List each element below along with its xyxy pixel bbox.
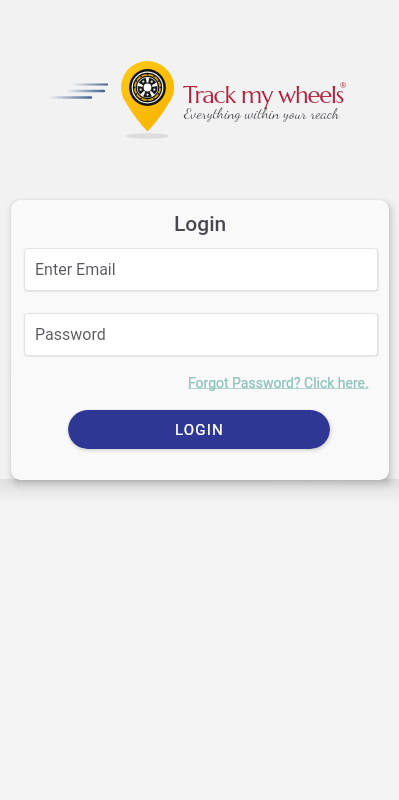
staticText: Everything within your reach: [184, 104, 340, 122]
staticText: Track my wheels: [183, 80, 344, 110]
staticText: Login: [174, 212, 227, 237]
button[interactable]: Enter Email: [24, 248, 378, 291]
staticText: ®: [340, 81, 347, 90]
button[interactable]: Password: [24, 313, 378, 356]
staticText: LOGIN: [175, 421, 224, 439]
staticText: Enter Email: [35, 260, 116, 279]
staticText: Password: [35, 325, 106, 344]
button[interactable]: LOGIN: [68, 410, 330, 449]
button[interactable]: Forgot Password? Click here.: [188, 375, 369, 391]
